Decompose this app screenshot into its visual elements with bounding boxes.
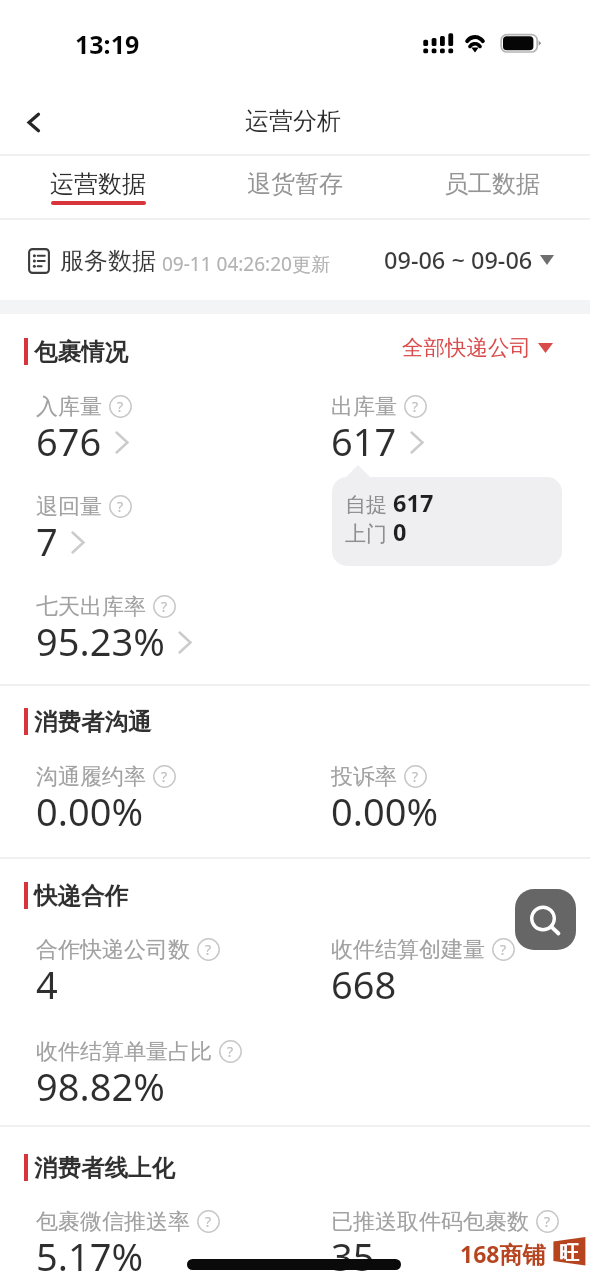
staticText: 5.17% bbox=[36, 1230, 143, 1280]
staticText: 全部快递公司 bbox=[402, 334, 531, 361]
staticText: 09-06 ~ 09-06 bbox=[384, 244, 533, 276]
button[interactable]: 收件结算单量占比 bbox=[36, 1038, 242, 1118]
staticText: ? bbox=[544, 1212, 551, 1231]
staticText: 员工数据 bbox=[444, 169, 540, 199]
staticText: ? bbox=[500, 940, 507, 959]
staticText: 包裹微信推送率 bbox=[36, 1208, 190, 1236]
button[interactable]: 收件结算创建量 bbox=[331, 936, 515, 1016]
button[interactable]: 沟通履约率 bbox=[36, 763, 176, 843]
staticText: 运营数据 bbox=[50, 169, 146, 199]
staticText: 168商铺 bbox=[460, 1238, 546, 1269]
staticText: 收件结算创建量 bbox=[331, 936, 485, 964]
staticText: 已推送取件码包裹数 bbox=[331, 1208, 529, 1236]
button[interactable]: 合作快递公司数 bbox=[36, 936, 220, 1016]
button[interactable]: 员工数据 bbox=[393, 155, 590, 218]
staticText: 4 bbox=[36, 958, 58, 1010]
staticText: 95.23% bbox=[36, 615, 165, 667]
button[interactable]: 09-06 ~ 09-06 bbox=[384, 238, 554, 282]
staticText: ? bbox=[161, 597, 168, 616]
staticText: 投诉率 bbox=[331, 763, 397, 791]
staticText: ? bbox=[205, 1212, 212, 1231]
staticText: 退回量 bbox=[36, 493, 102, 521]
button[interactable]: 已推送取件码包裹数 bbox=[331, 1208, 559, 1280]
staticText: ? bbox=[205, 940, 212, 959]
staticText: 13:19 bbox=[75, 27, 140, 61]
staticText: 七天出库率 bbox=[36, 593, 146, 621]
staticText: 旺 bbox=[559, 1241, 579, 1266]
staticText: 09-11 04:26:20更新 bbox=[162, 251, 330, 277]
staticText: 35 bbox=[331, 1230, 375, 1280]
staticText: 出库量 bbox=[331, 393, 397, 421]
staticText: ? bbox=[412, 397, 419, 416]
staticText: ? bbox=[117, 497, 124, 516]
staticText: 消费者沟通 bbox=[34, 707, 152, 737]
staticText: 合作快递公司数 bbox=[36, 936, 190, 964]
staticText: 0 bbox=[393, 516, 407, 548]
staticText: ? bbox=[227, 1042, 234, 1061]
staticText: 入库量 bbox=[36, 393, 102, 421]
staticText: 7 bbox=[36, 515, 58, 567]
staticText: 运营分析 bbox=[245, 106, 341, 136]
button[interactable]: 运营数据 bbox=[0, 155, 196, 218]
staticText: 676 bbox=[36, 415, 102, 467]
staticText: 沟通履约率 bbox=[36, 763, 146, 791]
staticText: 0.00% bbox=[36, 785, 143, 837]
staticText: 上门 bbox=[345, 519, 393, 548]
staticText: 617 bbox=[331, 415, 397, 467]
staticText: 服务数据 bbox=[60, 246, 156, 276]
staticText: 617 bbox=[393, 487, 434, 519]
staticText: ? bbox=[161, 767, 168, 786]
button[interactable]: 全部快递公司 bbox=[402, 334, 553, 361]
button[interactable]: 入库量 bbox=[36, 393, 132, 473]
staticText: 98.82% bbox=[36, 1060, 165, 1112]
staticText: 快递合作 bbox=[34, 881, 128, 911]
button[interactable]: 包裹微信推送率 bbox=[36, 1208, 220, 1280]
staticText: ? bbox=[412, 767, 419, 786]
staticText: 退货暂存 bbox=[247, 169, 343, 199]
staticText: 0.00% bbox=[331, 785, 438, 837]
staticText: 收件结算单量占比 bbox=[36, 1038, 212, 1066]
staticText: 668 bbox=[331, 958, 397, 1010]
staticText: ? bbox=[117, 397, 124, 416]
staticText: 自提 bbox=[345, 490, 393, 519]
button[interactable]: Search bbox=[515, 889, 576, 950]
button[interactable]: 退回量 bbox=[36, 493, 132, 573]
staticText: 包裹情况 bbox=[34, 337, 128, 367]
staticText: 消费者线上化 bbox=[34, 1153, 175, 1183]
button[interactable]: 出库量 bbox=[331, 393, 427, 473]
button[interactable]: Back bbox=[10, 99, 56, 145]
button[interactable]: 投诉率 bbox=[331, 763, 438, 843]
button[interactable]: 七天出库率 bbox=[36, 593, 193, 673]
button[interactable]: 退货暂存 bbox=[196, 155, 393, 218]
